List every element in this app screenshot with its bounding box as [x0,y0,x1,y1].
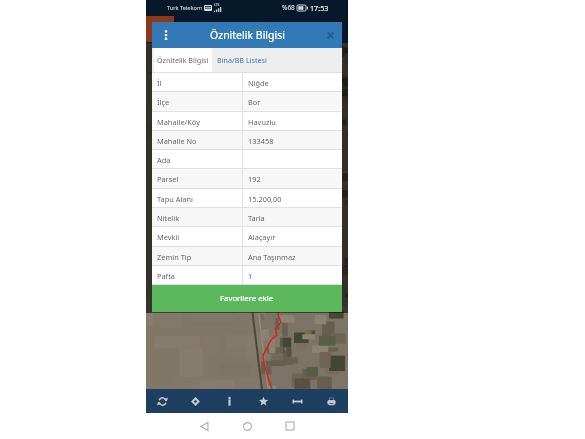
button[interactable]: Mahalle No [152,131,342,150]
staticText: 15.200,00 [248,194,282,204]
staticText: Tarla [248,213,265,223]
button[interactable]: Close [318,22,342,48]
staticText: Pafta [157,271,175,281]
staticText: Niğde [248,78,269,88]
button[interactable]: İlçe [152,92,342,112]
staticText: LTE [214,3,220,7]
button[interactable]: Recents [277,413,303,439]
button[interactable]: Back [191,413,217,439]
button[interactable]: Öznitelik Bilgisi [154,48,212,72]
staticText: Bina/BB Listesi [217,55,267,65]
staticText: 192 [248,174,261,184]
staticText: 1 [248,271,253,281]
staticText: Öznitelik Bilgisi [210,28,285,42]
staticText: Öznitelik Bilgisi [157,55,209,65]
staticText: %68 [282,3,295,12]
button[interactable]: Ada [152,150,342,169]
staticText: Favorilere ekle [220,293,274,304]
button[interactable]: Menu [152,22,179,48]
staticText: Zemin Tip [157,252,192,262]
button[interactable]: Favorite [246,389,280,413]
staticText: Turk Telekom [167,4,203,12]
button[interactable]: İl [152,73,342,92]
staticText: Ada [157,155,171,165]
staticText: Havuzlu [248,117,276,127]
button[interactable]: Home [234,413,260,439]
button[interactable]: Measure [280,389,314,413]
staticText: Bor [248,97,261,107]
staticText: Parsel [157,174,179,184]
button[interactable]: Mevkii [152,227,342,247]
button[interactable]: Bina/BB Listesi [212,48,342,72]
staticText: Ana Taşınmaz [248,252,296,262]
staticText: İlçe [157,97,170,107]
button[interactable]: Print [314,389,348,413]
staticText: 17:53 [310,3,329,13]
staticText: Nitelik [157,213,180,223]
button[interactable]: Parsel [152,169,342,189]
staticText: Mahalle No [157,136,197,146]
staticText: Tapu Alanı [157,194,193,204]
staticText: Mahalle/Köy [157,117,200,127]
button[interactable]: Nitelik [152,208,342,227]
button[interactable]: Zemin Tip [152,247,342,266]
staticText: İl [157,78,162,88]
button[interactable]: Info [212,389,246,413]
button[interactable]: Favorilere ekle [152,285,342,312]
staticText: Alaçayır [248,232,276,242]
staticText: 133458 [248,136,274,146]
button[interactable]: Locate [179,389,212,413]
button[interactable]: Pafta [152,266,342,285]
button[interactable]: Tapu Alanı [152,189,342,208]
staticText: Mevkii [157,232,180,242]
button[interactable]: Refresh [146,389,179,413]
button[interactable]: Mahalle/Köy [152,112,342,131]
